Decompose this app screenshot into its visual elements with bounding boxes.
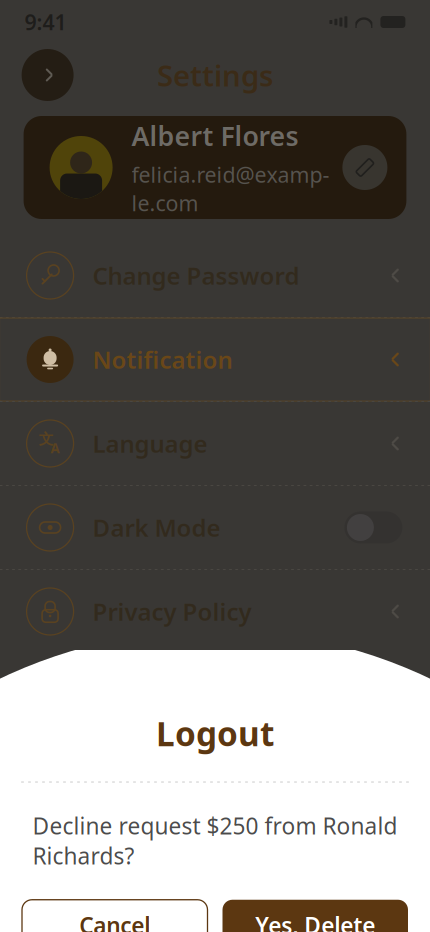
button[interactable]: Dark Mode toggle	[344, 511, 402, 543]
staticText: 文	[39, 430, 54, 448]
staticText: 9:41	[25, 8, 67, 36]
button[interactable]: Dark Mode	[0, 486, 430, 569]
button[interactable]: Yes, Delete	[222, 900, 408, 932]
staticText: Yes, Delete	[255, 910, 375, 932]
staticText: Privacy Policy	[93, 596, 252, 627]
staticText: Decline request $250 from Ronald Richard…	[32, 810, 397, 871]
staticText: Albert Flores	[132, 118, 299, 153]
staticText: Change Password	[93, 260, 300, 291]
staticText: Language	[93, 428, 208, 459]
staticText: Cancel	[79, 910, 150, 932]
staticText: felicia.reid@example.com	[132, 160, 330, 217]
staticText: Logout	[156, 711, 274, 756]
button[interactable]: Back	[22, 49, 74, 101]
staticText: Notification	[93, 344, 233, 375]
staticText: Settings	[157, 55, 273, 94]
button[interactable]: Change Password	[0, 234, 430, 317]
button[interactable]: Privacy Policy	[0, 570, 430, 653]
button[interactable]: 文	[0, 402, 430, 485]
staticText: Dark Mode	[93, 512, 221, 543]
button[interactable]: Albert Flores	[24, 116, 406, 219]
button[interactable]: Notification	[0, 318, 430, 401]
staticText: A	[51, 439, 60, 457]
button[interactable]: Cancel	[22, 900, 207, 932]
